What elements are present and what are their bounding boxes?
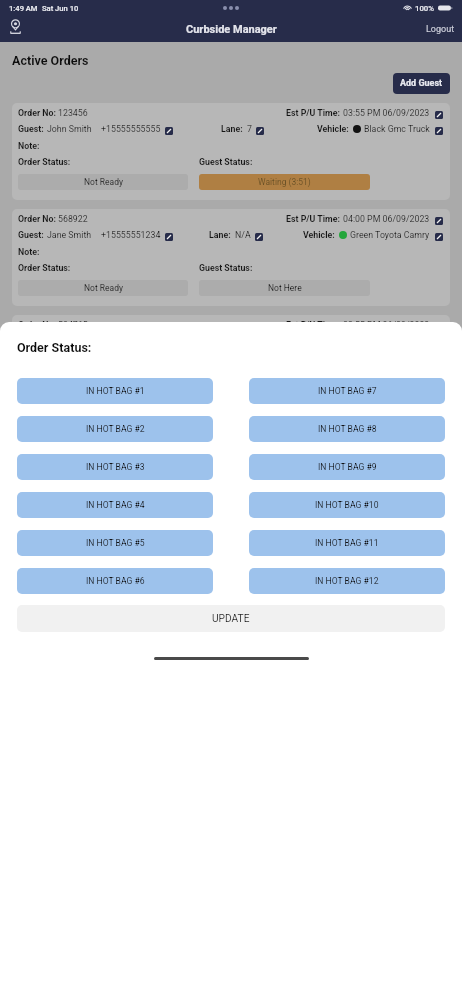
staticText: IN HOT BAG #10 <box>315 500 379 510</box>
button[interactable]: Not Ready <box>18 280 188 296</box>
staticText: Note: <box>18 247 40 257</box>
staticText: Not Ready <box>84 283 123 293</box>
button[interactable]: Logout <box>419 20 462 39</box>
button[interactable]: Edit <box>435 217 443 225</box>
staticText: Sat Jun 10 <box>42 4 79 13</box>
staticText: 03:55 PM 06/09/2023 <box>343 320 430 330</box>
staticText: Green Toyota Camry <box>350 230 430 240</box>
staticText: Order Status: <box>18 263 71 273</box>
button[interactable]: UPDATE <box>17 605 445 632</box>
button[interactable]: Edit <box>165 233 173 241</box>
staticText: IN HOT BAG #5 <box>86 538 145 548</box>
staticText: 568922 <box>58 214 88 224</box>
button[interactable]: Edit <box>255 233 263 241</box>
staticText: Guest Status: <box>199 263 253 273</box>
button[interactable]: IN HOT BAG #10 <box>249 492 445 518</box>
staticText: 584765 <box>58 320 88 330</box>
staticText: IN HOT BAG #11 <box>315 538 379 548</box>
staticText: 03:55 PM 06/09/2023 <box>343 108 430 118</box>
button[interactable]: IN HOT BAG #11 <box>249 530 445 556</box>
button[interactable]: Edit <box>256 127 264 135</box>
button[interactable]: Order No: <box>12 209 450 306</box>
staticText: 100% <box>415 4 435 13</box>
staticText: Vehicle: <box>303 230 335 240</box>
staticText: Est P/U Time: <box>286 320 340 330</box>
button[interactable]: Waiting (3:51) <box>199 174 370 190</box>
staticText: 123456 <box>58 108 88 118</box>
button[interactable]: Edit <box>165 127 173 135</box>
staticText: +15555555555 <box>101 124 161 134</box>
button[interactable]: IN HOT BAG #1 <box>17 378 213 404</box>
staticText: Order No: <box>18 214 56 224</box>
button[interactable]: Edit <box>435 111 443 119</box>
button[interactable]: IN HOT BAG #3 <box>17 454 213 480</box>
staticText: Active Orders <box>12 53 89 68</box>
staticText: IN HOT BAG #9 <box>318 462 377 472</box>
staticText: Not Ready <box>84 177 123 187</box>
staticText: IN HOT BAG #6 <box>86 576 145 586</box>
button[interactable]: IN HOT BAG #6 <box>17 568 213 594</box>
staticText: Lane: <box>221 124 243 134</box>
staticText: Jane Smith <box>47 230 92 240</box>
button[interactable]: IN HOT BAG #9 <box>249 454 445 480</box>
button[interactable]: Order No: <box>12 315 450 412</box>
button[interactable]: IN HOT BAG #8 <box>249 416 445 442</box>
staticText: IN HOT BAG #2 <box>86 424 145 434</box>
button[interactable]: IN HOT BAG #7 <box>249 378 445 404</box>
staticText: Guest Status: <box>199 157 253 167</box>
button[interactable]: Not Ready <box>18 386 188 402</box>
button[interactable]: Not Here <box>199 386 370 402</box>
staticText: John Smith <box>47 124 92 134</box>
staticText: Guest: <box>18 230 44 240</box>
staticText: IN HOT BAG #3 <box>86 462 145 472</box>
staticText: Not Ready <box>84 389 123 399</box>
button[interactable]: IN HOT BAG #4 <box>17 492 213 518</box>
staticText: Not Here <box>268 283 302 293</box>
staticText: 04:00 PM 06/09/2023 <box>343 214 430 224</box>
staticText: IN HOT BAG #12 <box>315 576 379 586</box>
staticText: Add Guest <box>400 78 443 89</box>
staticText: Order Status: <box>18 369 71 379</box>
staticText: Order Status: <box>17 340 92 355</box>
staticText: Order No: <box>18 108 56 118</box>
staticText: Black Gmc Truck <box>364 124 430 134</box>
staticText: Guest: <box>18 124 44 134</box>
button[interactable]: Edit <box>435 127 443 135</box>
staticText: Order No: <box>18 320 56 330</box>
staticText: Est P/U Time: <box>286 108 340 118</box>
staticText: Logout <box>426 24 455 35</box>
staticText: Vehicle: <box>317 124 349 134</box>
button[interactable]: IN HOT BAG #2 <box>17 416 213 442</box>
button[interactable]: Order No: <box>12 103 450 200</box>
button[interactable]: Edit <box>435 233 443 241</box>
button[interactable]: Not Ready <box>18 174 188 190</box>
staticText: UPDATE <box>212 613 250 625</box>
button[interactable]: IN HOT BAG #12 <box>249 568 445 594</box>
button[interactable]: IN HOT BAG #5 <box>17 530 213 556</box>
staticText: IN HOT BAG #7 <box>318 386 377 396</box>
staticText: Waiting (3:51) <box>258 177 311 187</box>
staticText: Bob Jones <box>47 336 89 346</box>
staticText: Guest: <box>18 336 44 346</box>
button[interactable]: Add Guest <box>393 73 450 94</box>
staticText: Order Status: <box>18 157 71 167</box>
staticText: Est P/U Time: <box>286 214 340 224</box>
staticText: Curbside Manager <box>186 23 277 36</box>
staticText: IN HOT BAG #4 <box>86 500 145 510</box>
staticText: 1:49 AM <box>9 4 38 13</box>
staticText: 7 <box>247 124 252 134</box>
button[interactable]: Location <box>4 16 26 38</box>
button[interactable]: Not Here <box>199 280 370 296</box>
staticText: +15555551234 <box>101 230 161 240</box>
staticText: N/A <box>235 230 251 240</box>
